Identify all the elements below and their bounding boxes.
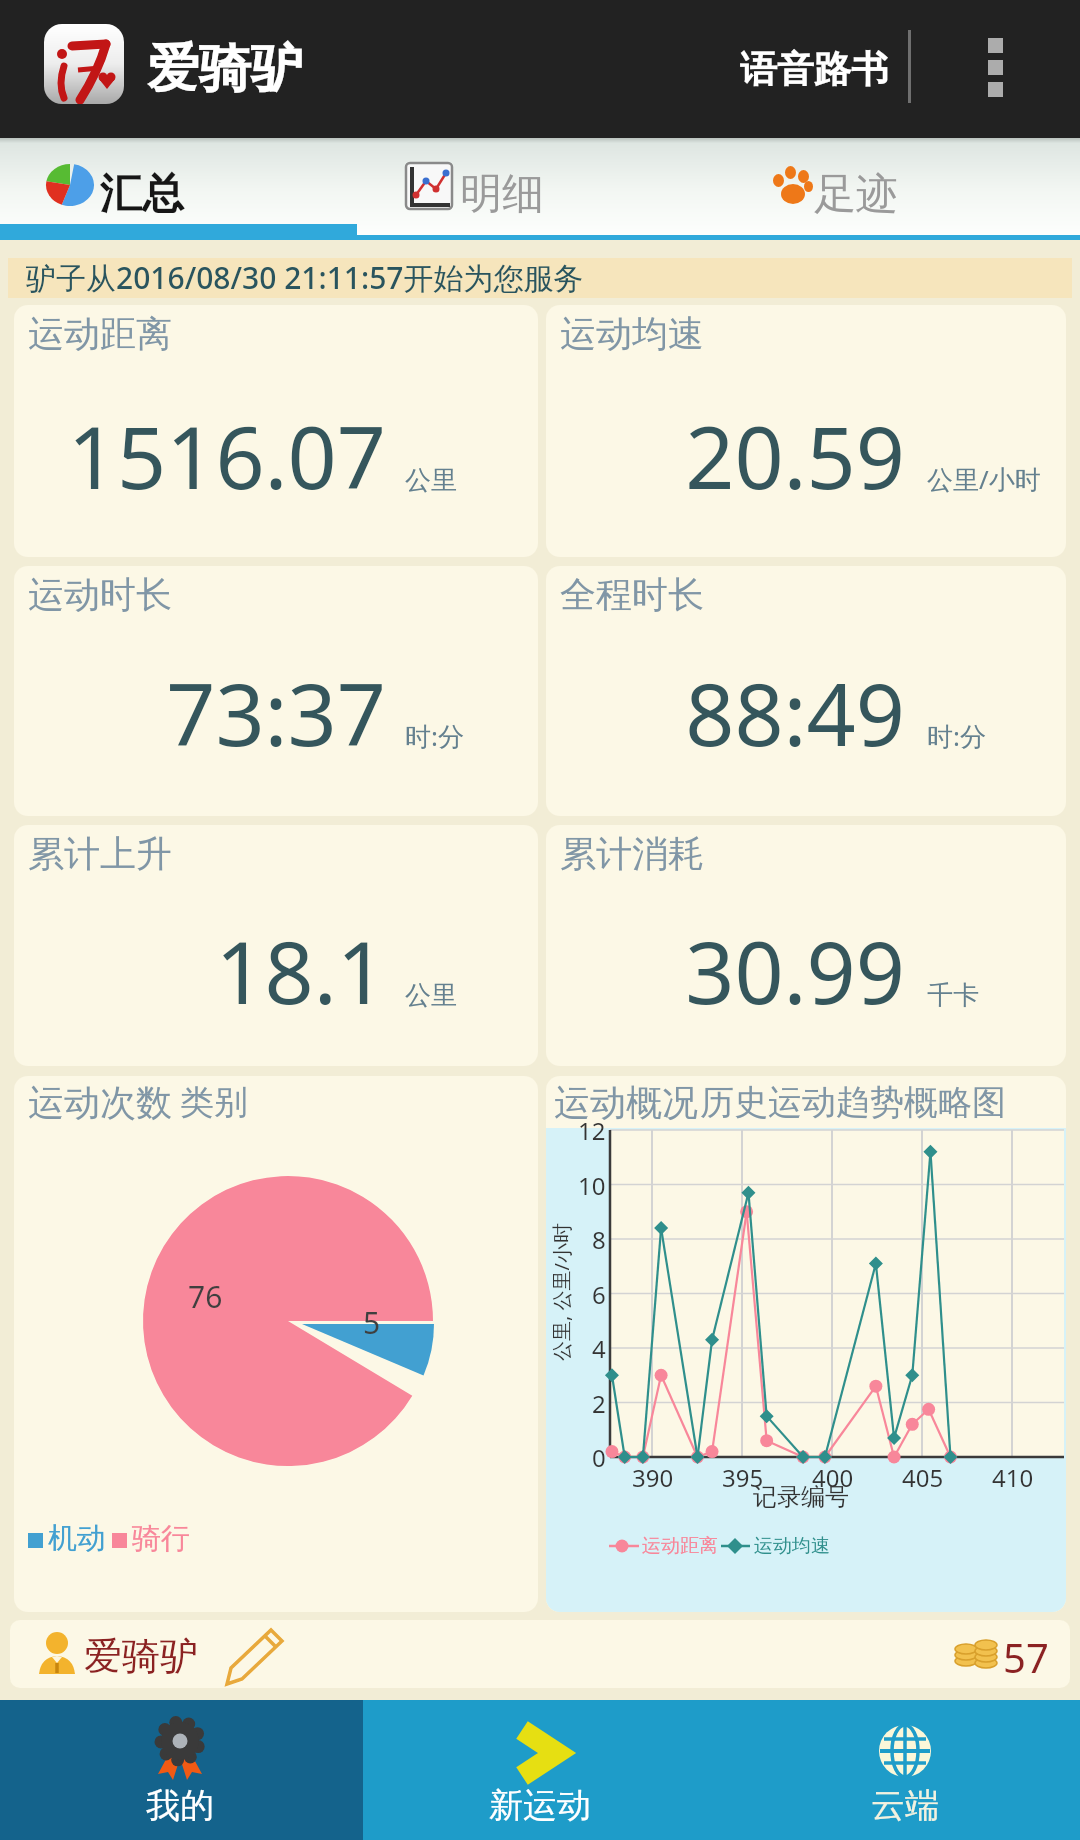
staticText: 时:分 <box>405 718 464 754</box>
staticText: 我的 <box>146 1784 214 1827</box>
staticText: 公里/小时 <box>927 461 1041 497</box>
button[interactable]: 运动概况 <box>546 1076 1066 1612</box>
button[interactable]: 明细 <box>357 140 720 224</box>
staticText: 云端 <box>871 1784 939 1827</box>
staticText: 记录编号 <box>753 1482 849 1512</box>
staticText: 骑行 <box>132 1520 190 1557</box>
button[interactable]: 汇总 <box>0 140 357 224</box>
staticText: 6 <box>592 1278 606 1311</box>
staticText: 运动时长 <box>28 572 172 617</box>
staticText: 足迹 <box>814 168 898 221</box>
staticText: 395 <box>722 1461 764 1494</box>
button[interactable]: 爱骑驴 <box>10 1620 1070 1688</box>
staticText: 爱骑驴 <box>84 1632 198 1680</box>
button[interactable]: 云端 <box>720 1700 1080 1840</box>
staticText: 30.99 <box>566 912 905 1029</box>
staticText: 驴子从2016/08/30 21:11:57开始为您服务 <box>26 257 584 298</box>
staticText: 1516.07 <box>54 397 386 514</box>
staticText: 明细 <box>460 168 544 221</box>
staticText: 5 <box>363 1302 381 1343</box>
staticText: 运动均速 <box>560 311 704 356</box>
button[interactable]: 累计上升 <box>14 825 538 1066</box>
staticText: 4 <box>592 1332 606 1365</box>
button[interactable]: 运动时长 <box>14 566 538 816</box>
staticText: 8 <box>592 1223 606 1256</box>
staticText: 390 <box>632 1461 674 1494</box>
staticText: 新运动 <box>489 1784 591 1827</box>
staticText: 18.1 <box>54 912 386 1029</box>
staticText: 88:49 <box>566 654 905 771</box>
staticText: 10 <box>578 1169 606 1202</box>
staticText: 千卡 <box>927 979 979 1012</box>
button[interactable]: 运动均速 <box>546 305 1066 557</box>
staticText: 运动概况 <box>554 1080 698 1125</box>
button[interactable]: 足迹 <box>720 140 1080 224</box>
staticText: 公里 <box>405 464 457 497</box>
staticText: 运动次数 <box>28 1080 172 1125</box>
staticText: 机动 <box>48 1520 106 1557</box>
button[interactable]: 累计消耗 <box>546 825 1066 1066</box>
button[interactable]: 全程时长 <box>546 566 1066 816</box>
staticText: 类别 <box>180 1081 248 1124</box>
staticText: 公里 <box>405 979 457 1012</box>
staticText: 爱骑驴 <box>147 36 303 102</box>
button[interactable]: 我的 <box>0 1700 363 1840</box>
staticText: 400 <box>812 1461 854 1494</box>
staticText: 累计上升 <box>28 831 172 876</box>
button[interactable]: 语音路书 <box>714 19 914 119</box>
button[interactable] <box>950 14 1060 124</box>
button[interactable]: 运动距离 <box>14 305 538 557</box>
staticText: 73:37 <box>54 654 386 771</box>
staticText: 410 <box>992 1461 1034 1494</box>
staticText: 57 <box>1003 1630 1049 1684</box>
staticText: 运动均速 <box>754 1534 830 1558</box>
staticText: 公里, 公里/小时 <box>548 1223 575 1361</box>
staticText: 全程时长 <box>560 572 704 617</box>
staticText: 20.59 <box>566 397 905 514</box>
staticText: 累计消耗 <box>560 831 704 876</box>
staticText: 0 <box>592 1441 606 1474</box>
staticText: 76 <box>188 1276 223 1317</box>
staticText: 汇总 <box>100 168 184 221</box>
staticText: 时:分 <box>927 718 986 754</box>
staticText: 语音路书 <box>740 46 888 93</box>
button[interactable] <box>225 1628 289 1680</box>
staticText: 2 <box>592 1387 606 1420</box>
button[interactable]: 运动次数 <box>14 1076 538 1612</box>
staticText: 12 <box>578 1114 606 1147</box>
staticText: 运动距离 <box>642 1534 718 1558</box>
staticText: 运动距离 <box>28 311 172 356</box>
button[interactable]: 新运动 <box>363 1700 720 1840</box>
staticText: 405 <box>902 1461 944 1494</box>
staticText: 历史运动趋势概略图 <box>700 1081 1006 1124</box>
